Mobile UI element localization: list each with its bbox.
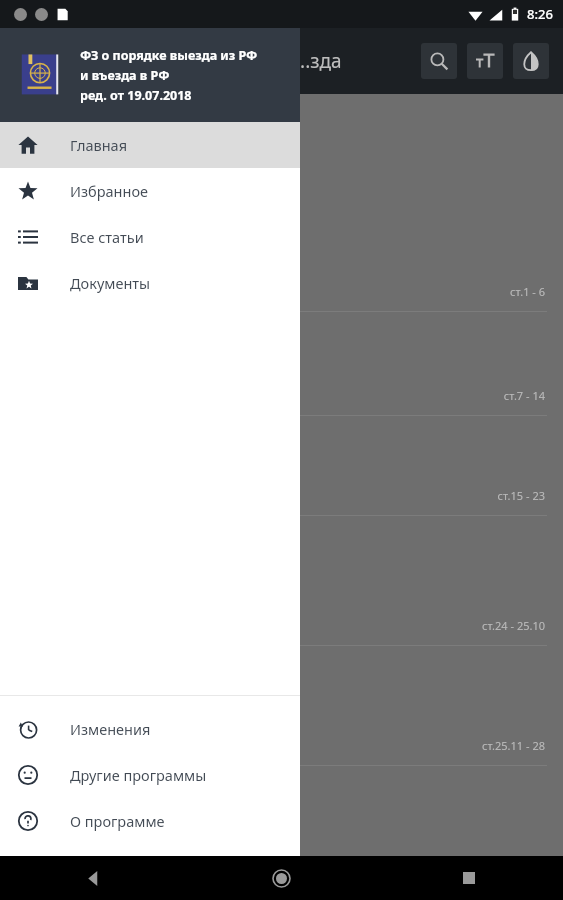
staticText: Документы bbox=[70, 273, 151, 293]
staticText: Избранное bbox=[70, 181, 148, 201]
button[interactable]: Back bbox=[0, 856, 187, 900]
staticText: ст.7 - 14 bbox=[0, 388, 545, 403]
button[interactable]: Recents bbox=[375, 856, 563, 900]
button[interactable]: Другие программы bbox=[0, 752, 300, 798]
staticText: Изменения bbox=[70, 719, 151, 739]
staticText: ст.1 - 6 bbox=[0, 284, 545, 299]
staticText: Все статьи bbox=[70, 227, 144, 247]
staticText: ст.24 - 25.10 bbox=[0, 618, 545, 633]
staticText: ред. от 19.07.2018 bbox=[80, 87, 192, 104]
staticText: 8:26 bbox=[527, 5, 553, 23]
button[interactable]: Search bbox=[421, 43, 457, 79]
button[interactable]: Home bbox=[187, 856, 375, 900]
button[interactable]: Text size bbox=[467, 43, 503, 79]
staticText: ...за bbox=[16, 694, 41, 712]
staticText: Другие программы bbox=[70, 765, 207, 785]
staticText: и въезда в РФ bbox=[80, 67, 170, 84]
button[interactable]: Все статьи bbox=[0, 214, 300, 260]
staticText: ст.15 - 23 bbox=[0, 488, 545, 503]
button[interactable]: Изменения bbox=[0, 706, 300, 752]
staticText: ФЗ о порядке выезда из РФ bbox=[80, 47, 258, 64]
button[interactable]: Избранное bbox=[0, 168, 300, 214]
staticText: ...кой Федерации и въезда в bbox=[16, 104, 235, 124]
staticText: Главная bbox=[70, 135, 128, 155]
button[interactable]: Документы bbox=[0, 260, 300, 306]
staticText: О программе bbox=[70, 811, 165, 831]
staticText: ст.25.11 - 28 bbox=[0, 738, 545, 753]
button[interactable]: О программе bbox=[0, 798, 300, 844]
button[interactable]: Главная bbox=[0, 122, 300, 168]
staticText: ...зда bbox=[295, 48, 342, 74]
button[interactable]: Contrast bbox=[513, 43, 549, 79]
